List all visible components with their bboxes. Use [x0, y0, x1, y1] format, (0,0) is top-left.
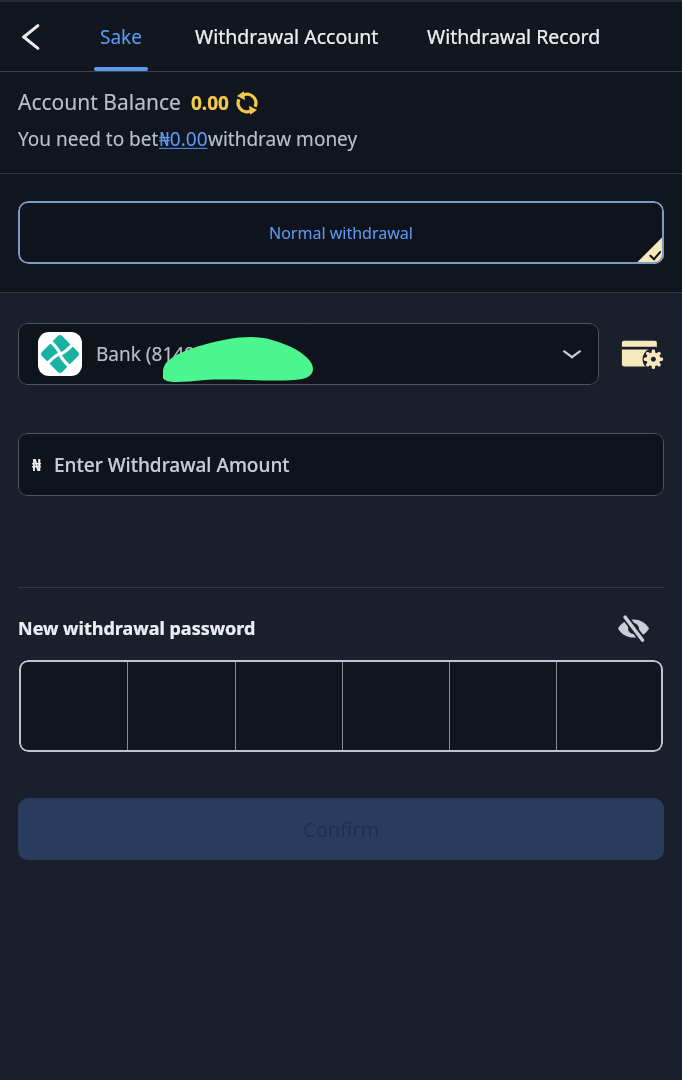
button[interactable]: Bank (8149) — [18, 323, 599, 385]
button[interactable]: Refresh balance — [235, 91, 259, 115]
staticText: New withdrawal password — [18, 616, 256, 641]
staticText: Withdrawal Record — [427, 23, 601, 50]
button[interactable]: Withdrawal Account — [187, 2, 387, 71]
staticText: Account Balance — [18, 88, 181, 117]
button[interactable]: Normal withdrawal — [18, 201, 664, 264]
staticText: Confirm — [303, 816, 380, 843]
button[interactable]: Back — [0, 2, 62, 71]
staticText: Withdrawal Account — [195, 23, 379, 50]
button[interactable]: Sake — [86, 2, 156, 71]
button[interactable]: ₦0.00 — [159, 126, 208, 152]
button[interactable]: Toggle password visibility — [614, 609, 652, 647]
staticText: 0.00 — [191, 90, 229, 116]
staticText: withdraw money — [208, 126, 358, 152]
button[interactable]: Manage bank cards — [621, 331, 667, 377]
staticText: Enter Withdrawal Amount — [54, 452, 290, 478]
button[interactable] — [19, 660, 663, 752]
staticText: You need to bet — [18, 126, 159, 152]
staticText: ₦ — [32, 454, 42, 476]
button[interactable]: ₦ — [18, 433, 664, 496]
staticText: Bank (8149) — [96, 341, 201, 367]
staticText: Normal withdrawal — [269, 222, 413, 244]
staticText: Sake — [100, 24, 142, 50]
button[interactable]: Withdrawal Record — [422, 2, 606, 71]
